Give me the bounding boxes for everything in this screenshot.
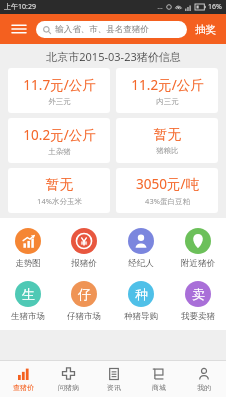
staticText: 3050元/吨 [136, 175, 199, 193]
staticText: 生猪市场 [11, 311, 45, 322]
staticText: 种猪导购 [124, 311, 158, 322]
staticText: 10.2元/公斤 [23, 126, 96, 144]
staticText: 上午10:29 [4, 2, 36, 12]
staticText: 输入省、市、县名查猪价 [55, 24, 149, 35]
staticText: 附近猪价 [181, 258, 215, 269]
button[interactable]: 报猪价 [56, 226, 112, 271]
button[interactable]: 问猪病 [46, 361, 91, 397]
button[interactable]: 3050元/吨 [116, 168, 218, 213]
button[interactable]: 附近猪价 [169, 226, 226, 271]
staticText: 43%蛋白豆粕 [145, 196, 190, 206]
staticText: 猪粮比 [156, 146, 179, 155]
staticText: 经纪人 [128, 258, 154, 269]
button[interactable]: 抽奖 [193, 20, 218, 39]
button[interactable]: 输入省、市、县名查猪价 [36, 21, 187, 38]
button[interactable]: 查猪价 [0, 361, 46, 397]
staticText: 抽奖 [195, 23, 216, 36]
staticText: 暂无 [154, 126, 181, 143]
staticText: 北京市2015-03-23猪价信息 [46, 49, 181, 64]
staticText: 16% [208, 2, 222, 12]
staticText: 11.7元/公斤 [23, 76, 96, 94]
staticText: 仔猪市场 [67, 311, 101, 322]
staticText: 生 [22, 286, 35, 302]
staticText: 内三元 [156, 97, 179, 106]
staticText: 外三元 [48, 97, 71, 106]
button[interactable]: 走势图 [0, 226, 56, 271]
staticText: 报猪价 [71, 258, 97, 269]
button[interactable]: 11.2元/公斤 [116, 68, 218, 113]
staticText: 14%水分玉米 [37, 196, 82, 206]
staticText: 走势图 [15, 258, 41, 269]
button[interactable]: 种 [112, 279, 169, 324]
button[interactable]: 经纪人 [112, 226, 169, 271]
staticText: 卖 [192, 286, 205, 302]
staticText: 我的 [197, 383, 211, 392]
button[interactable]: 我的 [181, 361, 226, 397]
button[interactable]: 生 [0, 279, 56, 324]
staticText: 商城 [152, 383, 166, 392]
staticText: 问猪病 [58, 383, 79, 392]
staticText: 11.2元/公斤 [131, 76, 204, 94]
button[interactable]: 暂无 [8, 168, 110, 213]
staticText: 种 [135, 286, 148, 302]
staticText: … [157, 2, 163, 12]
staticText: 暂无 [46, 176, 73, 193]
staticText: 查猪价 [13, 383, 34, 392]
staticText: 我要卖猪 [181, 311, 215, 322]
button[interactable]: Menu [8, 18, 30, 40]
button[interactable]: 仔 [56, 279, 112, 324]
staticText: 土杂猪 [48, 147, 71, 156]
staticText: 资讯 [107, 383, 121, 392]
button[interactable]: 暂无 [116, 118, 218, 163]
button[interactable]: 资讯 [91, 361, 136, 397]
button[interactable]: 10.2元/公斤 [8, 118, 110, 163]
button[interactable]: 11.7元/公斤 [8, 68, 110, 113]
staticText: 仔 [78, 286, 91, 302]
button[interactable]: 卖 [169, 279, 226, 324]
button[interactable]: 商城 [136, 361, 181, 397]
